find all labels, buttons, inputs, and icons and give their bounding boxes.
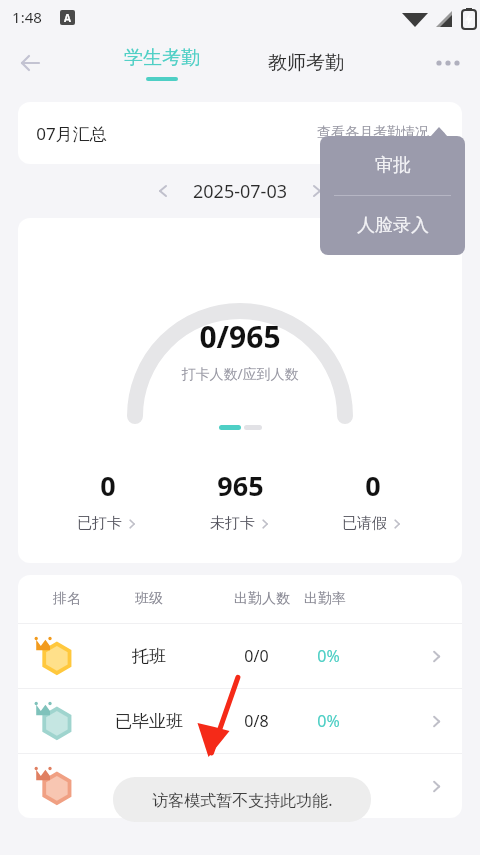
button[interactable]: 965 [198, 463, 283, 537]
staticText: 0/8 [244, 710, 269, 732]
button[interactable]: 教师考勤 [258, 47, 354, 79]
staticText: 0/0 [244, 645, 269, 667]
button[interactable]: Previous day [145, 173, 181, 209]
button[interactable]: 审批 [320, 136, 465, 195]
button[interactable]: 07月汇总 [18, 102, 462, 164]
staticText: 人脸录入 [357, 214, 429, 237]
staticText: 0% [317, 645, 340, 667]
staticText: 排名 [40, 590, 94, 608]
staticText: 出勤率 [304, 590, 346, 608]
staticText: 已打卡 [77, 514, 122, 533]
button[interactable]: 人脸录入 [320, 196, 465, 255]
staticText: 出勤人数 [226, 590, 298, 608]
staticText: 托班 [90, 646, 208, 667]
button[interactable]: 已毕业班 [18, 689, 462, 753]
staticText: 0% [317, 775, 340, 797]
staticText: 教师考勤 [268, 51, 344, 75]
button[interactable]: 0 [330, 463, 415, 537]
staticText: 审批 [375, 154, 411, 177]
button[interactable]: 0 [65, 463, 150, 537]
staticText: 查看各月考勤情况 [317, 124, 429, 142]
staticText: 0/13 [239, 775, 273, 797]
staticText: 学生考勤 [124, 46, 200, 70]
staticText: 0 [100, 467, 116, 504]
button[interactable]: 托班 [18, 624, 462, 688]
staticText: 未打卡 [210, 514, 255, 533]
staticText: 班级 [94, 590, 204, 608]
staticText: 965 [217, 467, 264, 504]
staticText: 已请假 [342, 514, 387, 533]
staticText: 0/965 [199, 316, 281, 357]
staticText: 1:48 [12, 7, 42, 27]
staticText: 0 [365, 467, 381, 504]
staticText: 小班 [90, 776, 208, 797]
staticText: A [64, 11, 71, 25]
staticText: 打卡人数/应到人数 [181, 364, 299, 383]
staticText: 访客模式暂不支持此功能. [152, 789, 333, 811]
staticText: 2025-07-03 [193, 179, 287, 204]
staticText: 07月汇总 [36, 122, 107, 145]
button[interactable]: 小班 [18, 754, 462, 818]
button[interactable]: More options [426, 41, 470, 85]
button[interactable]: Next day [299, 173, 335, 209]
staticText: 已毕业班 [90, 711, 208, 732]
button[interactable]: Back [8, 41, 52, 85]
button[interactable]: 学生考勤 [114, 42, 210, 85]
staticText: 0% [317, 710, 340, 732]
